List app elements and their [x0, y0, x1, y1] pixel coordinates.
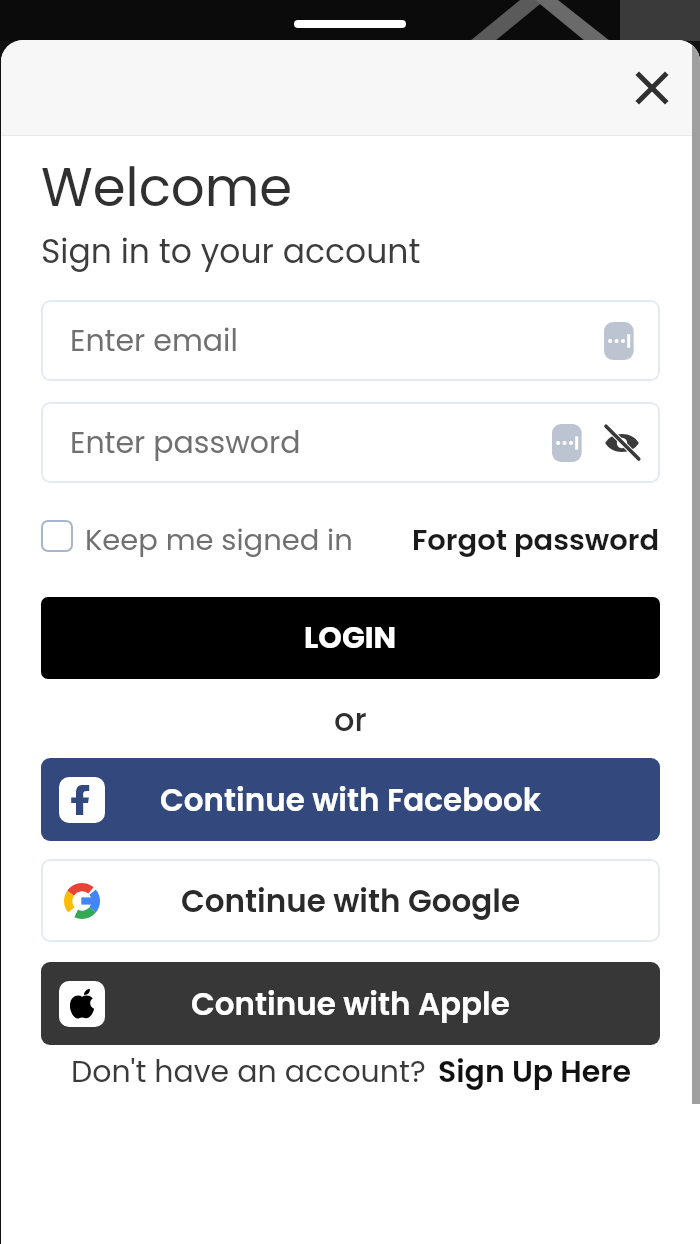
button[interactable]: Continue with Google — [41, 859, 660, 942]
button[interactable]: Enter email — [41, 300, 660, 381]
button[interactable]: Enter password — [41, 402, 660, 483]
staticText: or — [334, 697, 367, 742]
button[interactable]: Keep me signed in — [41, 520, 412, 561]
staticText: Continue with Google — [181, 879, 521, 922]
staticText: Sign Up Here — [438, 1051, 631, 1093]
button[interactable]: LOGIN — [41, 597, 660, 679]
staticText: Keep me signed in — [85, 520, 353, 561]
button[interactable]: Continue with Facebook — [41, 758, 660, 841]
staticText: Enter password — [70, 422, 301, 464]
button[interactable]: Continue with Apple — [41, 962, 660, 1045]
button[interactable]: Show password — [602, 423, 642, 463]
staticText: Sign in to your account — [41, 228, 421, 274]
button[interactable]: Sign Up Here — [438, 1051, 631, 1093]
staticText: Continue with Facebook — [160, 778, 541, 821]
button[interactable]: Forgot password — [412, 520, 660, 561]
staticText: Enter email — [70, 320, 238, 362]
staticText: Welcome — [41, 150, 293, 224]
staticText: Don't have an account? — [71, 1051, 426, 1093]
staticText: LOGIN — [304, 617, 397, 659]
staticText: Continue with Apple — [191, 982, 510, 1025]
staticText: Forgot password — [412, 520, 660, 561]
button[interactable]: Close — [628, 64, 676, 112]
